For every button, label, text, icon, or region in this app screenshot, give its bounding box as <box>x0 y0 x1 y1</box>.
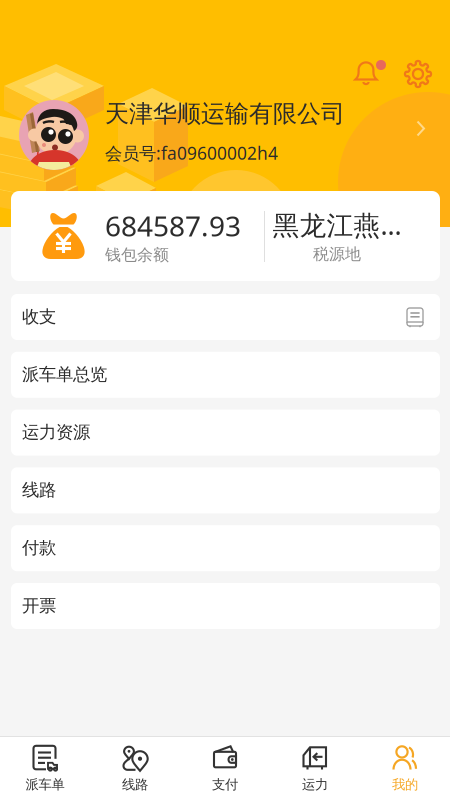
staticText: 支付 <box>212 776 238 793</box>
staticText: 天津华顺运输有限公司 <box>105 99 345 128</box>
staticText: 线路 <box>22 479 56 501</box>
button[interactable]: Settings <box>396 52 440 96</box>
button[interactable]: 支付 <box>180 737 270 800</box>
staticText: 开票 <box>22 595 56 616</box>
staticText: 税源地 <box>313 244 361 264</box>
staticText: 付款 <box>22 537 56 558</box>
staticText: 684587.93 <box>105 207 241 244</box>
staticText: 黑龙江燕... <box>272 207 401 242</box>
button[interactable]: 付款 <box>11 525 440 571</box>
button[interactable]: 运力资源 <box>11 410 440 456</box>
staticText: 我的 <box>392 776 418 793</box>
staticText: 线路 <box>122 776 148 793</box>
button[interactable]: 派车单总览 <box>11 352 440 398</box>
button[interactable]: 运力 <box>270 737 360 800</box>
button[interactable]: 天津华顺运输有限公司 <box>0 90 450 174</box>
staticText: 收支 <box>22 306 56 327</box>
button[interactable]: 我的 <box>360 737 450 800</box>
staticText: 派车单 <box>25 776 64 793</box>
button[interactable]: 开票 <box>11 583 440 629</box>
staticText: 钱包余额 <box>105 245 169 265</box>
button[interactable]: 线路 <box>90 737 180 800</box>
button[interactable]: Notifications <box>348 52 392 96</box>
staticText: 会员号:fa09600002h4 <box>105 141 278 164</box>
staticText: 运力资源 <box>22 422 90 443</box>
button[interactable]: 线路 <box>11 467 440 513</box>
button[interactable]: 收支 <box>11 294 440 340</box>
staticText: 派车单总览 <box>22 364 107 385</box>
staticText: 运力 <box>302 776 328 793</box>
button[interactable]: 派车单 <box>0 737 90 800</box>
